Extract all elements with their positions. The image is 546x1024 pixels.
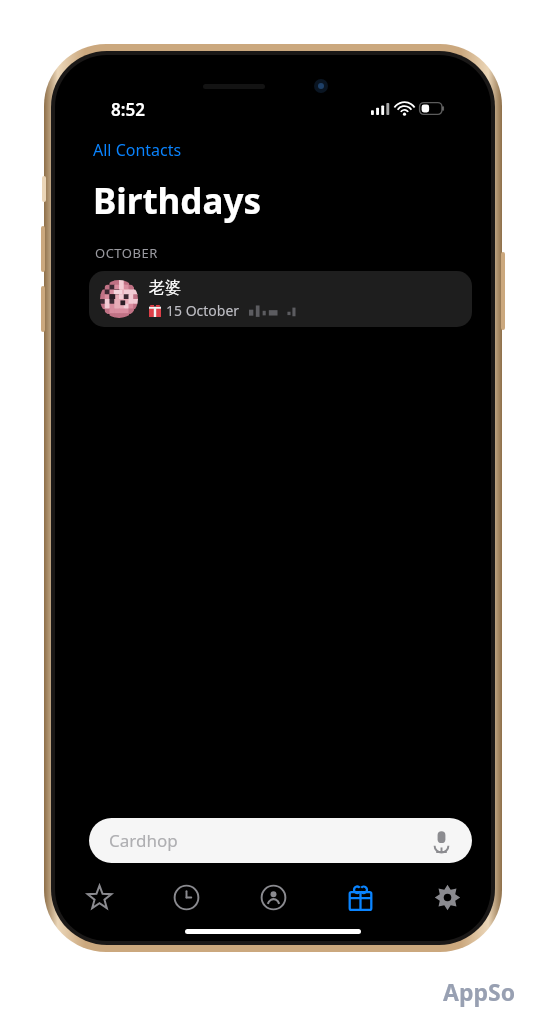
staticText: 老婆: [149, 278, 181, 298]
staticText: OCTOBER: [95, 244, 158, 262]
button[interactable]: Recents: [143, 873, 230, 921]
staticText: AppSo: [443, 976, 516, 1007]
button[interactable]: Settings: [404, 873, 491, 921]
staticText: Cardhop: [109, 829, 178, 852]
button[interactable]: All Contacts: [89, 135, 186, 165]
button[interactable]: Contacts: [230, 873, 317, 921]
button[interactable]: Favorites: [55, 873, 143, 921]
button[interactable]: Voice search: [428, 828, 454, 854]
staticText: All Contacts: [93, 139, 182, 161]
staticText: 8:52: [111, 98, 145, 121]
button[interactable]: Birthdays: [317, 873, 404, 921]
staticText: 15 October: [166, 301, 240, 320]
button[interactable]: 老婆: [89, 271, 472, 327]
staticText: Birthdays: [93, 177, 261, 225]
button[interactable]: Cardhop: [89, 818, 472, 863]
